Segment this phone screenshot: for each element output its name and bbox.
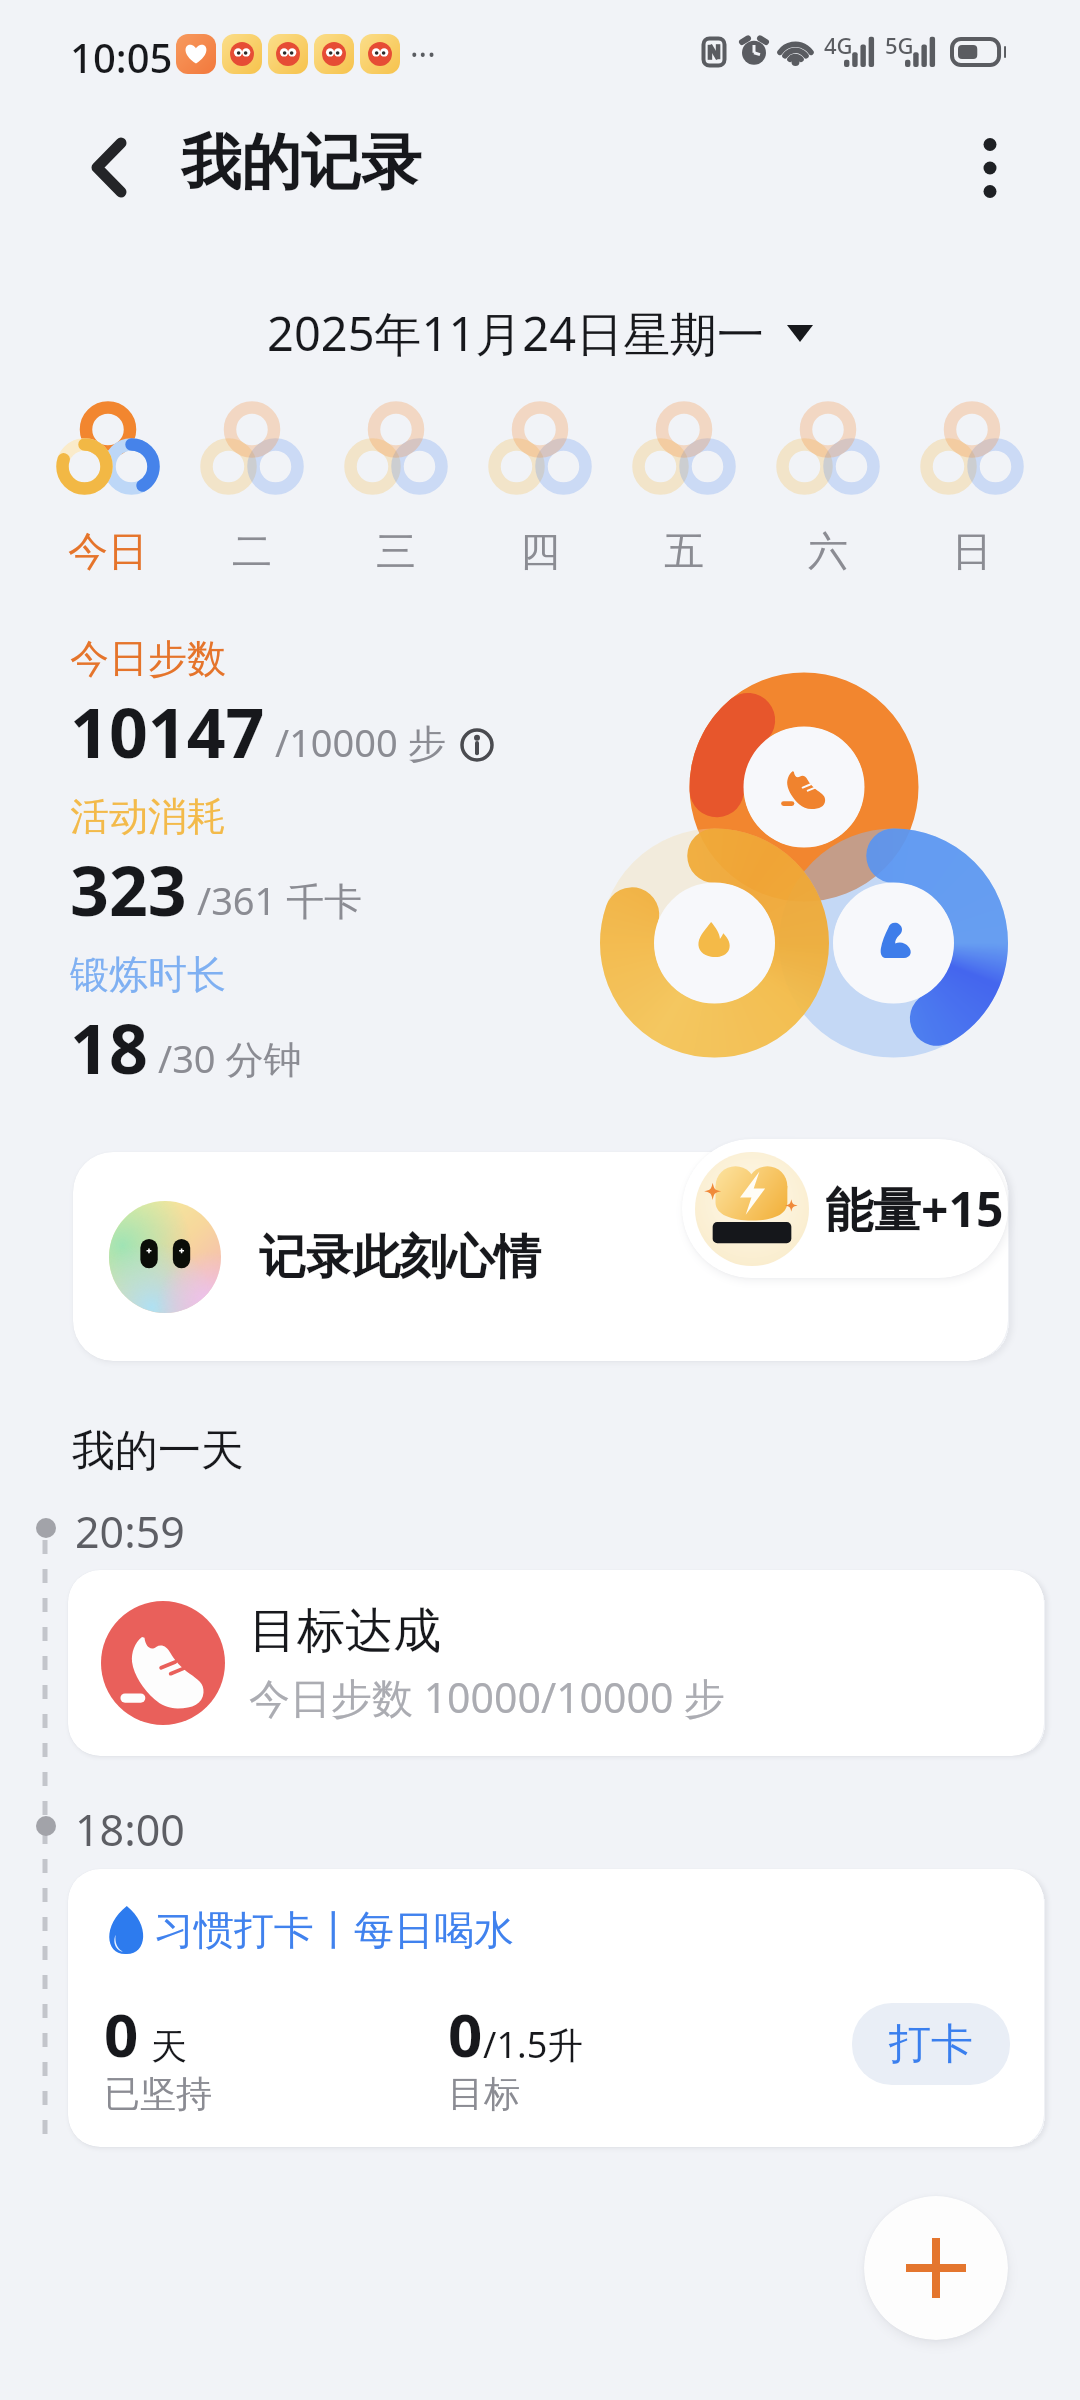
staticText: 活动消耗: [70, 792, 226, 841]
staticText: 天: [151, 2024, 187, 2069]
staticText: 20:59: [75, 1502, 185, 1561]
staticText: 323: [70, 843, 187, 936]
staticText: 记录此刻心情: [259, 1228, 541, 1287]
button[interactable]: 二: [180, 400, 324, 576]
staticText: /361 千卡: [197, 874, 363, 926]
staticText: 4G: [824, 30, 853, 60]
staticText: 能量+15: [825, 1176, 1004, 1242]
staticText: ···: [410, 32, 436, 76]
staticText: 18: [70, 1001, 148, 1094]
staticText: 目标达成: [249, 1601, 441, 1661]
button[interactable]: Add record: [864, 2196, 1008, 2340]
staticText: /1.5升: [483, 2020, 584, 2069]
staticText: 今日步数 10000/10000 步: [249, 1669, 726, 1725]
button[interactable]: 能量+15: [682, 1139, 1008, 1278]
staticText: /30 分钟: [158, 1032, 302, 1084]
staticText: 打卡: [889, 2018, 973, 2071]
staticText: 已坚持: [104, 2071, 212, 2116]
staticText: 今日: [68, 526, 148, 576]
button[interactable]: 四: [468, 400, 612, 576]
staticText: 四: [520, 526, 560, 576]
button[interactable]: Back: [39, 97, 179, 237]
staticText: 0: [104, 1993, 139, 2075]
staticText: 我的记录: [181, 125, 421, 201]
staticText: 0: [448, 1993, 483, 2075]
button[interactable]: 三: [324, 400, 468, 576]
button[interactable]: 目标达成: [68, 1570, 1044, 1756]
button[interactable]: 日: [900, 400, 1044, 576]
staticText: /10000 步: [275, 716, 446, 768]
button[interactable]: 2025年11月24日星期一: [0, 288, 1080, 378]
staticText: 锻炼时长: [70, 950, 226, 999]
staticText: 日: [952, 526, 992, 576]
staticText: 我的一天: [72, 1424, 244, 1478]
button[interactable]: 五: [612, 400, 756, 576]
button[interactable]: 记录此刻心情: [73, 1152, 1008, 1361]
button[interactable]: 今日: [36, 400, 180, 576]
staticText: 二: [232, 526, 272, 576]
staticText: 习惯打卡丨每日喝水: [154, 1905, 514, 1955]
staticText: 2025年11月24日星期一: [267, 301, 765, 365]
staticText: 5G: [885, 30, 914, 60]
staticText: 10147: [70, 685, 265, 778]
button[interactable]: 打卡: [852, 2003, 1010, 2085]
staticText: 18:00: [75, 1800, 185, 1859]
staticText: 10:05: [70, 30, 173, 84]
button[interactable]: 六: [756, 400, 900, 576]
staticText: 目标: [448, 2071, 520, 2116]
staticText: 今日步数: [70, 634, 226, 683]
staticText: 六: [808, 526, 848, 576]
staticText: 五: [664, 526, 704, 576]
button[interactable]: 习惯打卡丨每日喝水: [68, 1869, 1044, 2147]
staticText: 三: [376, 526, 416, 576]
button[interactable]: More options: [920, 98, 1060, 238]
